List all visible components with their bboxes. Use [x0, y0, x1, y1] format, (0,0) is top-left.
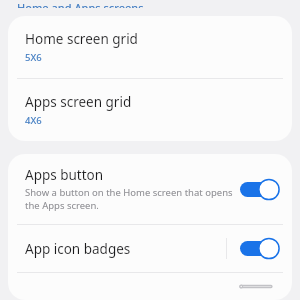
staticText: Show a button on the Home screen that op… [25, 186, 233, 212]
staticText: 5X6 [25, 51, 42, 64]
button[interactable]: Home screen grid [8, 16, 292, 78]
button[interactable]: App icon badges [8, 225, 292, 272]
button[interactable]: Apps button [240, 178, 281, 201]
staticText: Apps screen grid [25, 93, 132, 111]
staticText: Home and Apps screens [17, 0, 144, 8]
button[interactable]: Lock Home screen layout [8, 273, 292, 300]
button[interactable]: Lock Home screen layout [240, 285, 281, 288]
button[interactable]: App icon badges [240, 237, 281, 260]
staticText: App icon badges [25, 240, 131, 258]
staticText: Apps button [25, 166, 104, 184]
button[interactable]: Apps screen grid [8, 79, 292, 141]
staticText: Home screen grid [25, 30, 138, 48]
staticText: 4X6 [25, 114, 42, 127]
button[interactable]: Apps button [8, 154, 292, 224]
